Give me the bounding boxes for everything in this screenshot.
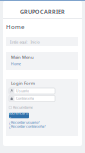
staticText: GRUPO CARRIER <box>20 8 65 15</box>
staticText: Identificarse <box>9 110 29 121</box>
button[interactable]: ¿Recordar usuario? <box>0 0 85 153</box>
button[interactable]: Identificarse <box>9 113 29 118</box>
staticText: ¿Recordar contraseña? <box>9 124 46 129</box>
staticText: Usuario <box>16 89 29 93</box>
staticText: Inicio <box>30 39 39 45</box>
staticText: Main Menu <box>11 54 34 60</box>
staticText: ¿Recordar usuario? <box>9 120 40 125</box>
staticText: Contraseña <box>16 96 34 101</box>
staticText: Login Form <box>11 80 35 86</box>
button[interactable]: Recuérdame <box>9 105 43 110</box>
button[interactable]: Home <box>0 0 85 153</box>
staticText: Home <box>11 62 21 66</box>
staticText: Home <box>6 22 24 31</box>
staticText: Recuérdame <box>13 105 33 110</box>
button[interactable]: ¿Recordar contraseña? <box>0 0 85 153</box>
staticText: Estás aquí: <box>9 39 27 45</box>
